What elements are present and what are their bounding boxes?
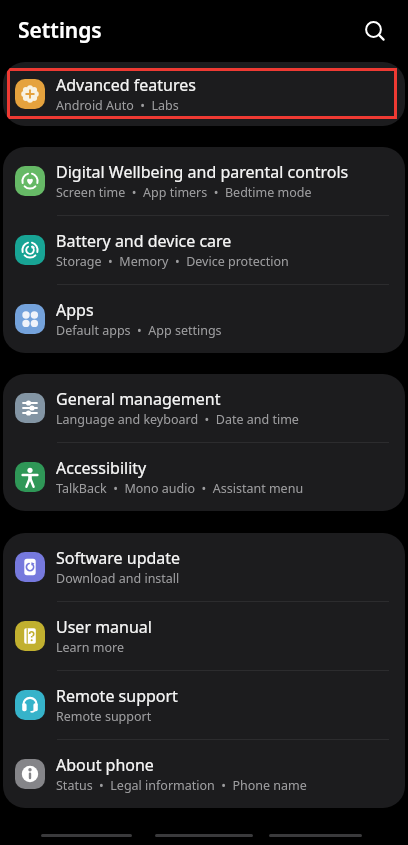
staticText: Learn more (56, 639, 124, 656)
staticText: User manual (56, 616, 152, 638)
staticText: Advanced features (56, 74, 196, 96)
staticText: Accessibility (56, 457, 147, 479)
staticText: About phone (56, 754, 154, 776)
button[interactable]: General management (3, 374, 405, 442)
staticText: Settings (18, 16, 102, 45)
staticText: Digital Wellbeing and parental controls (56, 161, 349, 183)
staticText: Remote support (56, 708, 152, 725)
staticText: Battery and device care (56, 230, 232, 252)
button[interactable]: Digital Wellbeing and parental controls (3, 147, 405, 215)
button[interactable] (155, 834, 253, 837)
staticText: Status • Legal information • Phone name (56, 777, 307, 794)
button[interactable]: About phone (3, 740, 405, 808)
button[interactable]: Battery and device care (3, 216, 405, 284)
staticText: Apps (56, 299, 94, 321)
button[interactable]: Remote support (3, 671, 405, 739)
staticText: Remote support (56, 685, 178, 707)
staticText: Storage • Memory • Device protection (56, 253, 289, 270)
staticText: TalkBack • Mono audio • Assistant menu (56, 480, 304, 497)
button[interactable]: Accessibility (3, 443, 405, 511)
staticText: Screen time • App timers • Bedtime mode (56, 184, 312, 201)
staticText: Android Auto • Labs (56, 97, 179, 114)
button[interactable] (269, 834, 362, 837)
button[interactable]: Advanced features (3, 62, 405, 126)
button[interactable] (41, 834, 132, 837)
staticText: Download and install (56, 570, 180, 587)
button[interactable]: User manual (3, 602, 405, 670)
staticText: Software update (56, 547, 181, 569)
staticText: Language and keyboard • Date and time (56, 411, 299, 428)
staticText: General management (56, 388, 221, 410)
button[interactable]: Apps (3, 285, 405, 353)
button[interactable] (355, 10, 395, 50)
button[interactable]: Software update (3, 533, 405, 601)
staticText: Default apps • App settings (56, 322, 222, 339)
